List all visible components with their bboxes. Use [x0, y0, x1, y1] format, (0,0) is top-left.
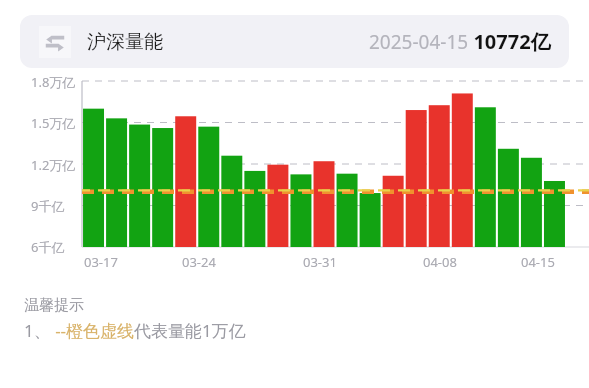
staticText: 1.8万亿 — [31, 73, 76, 91]
staticText: 1、 --橙色虚线代表量能1万亿 — [24, 319, 246, 342]
staticText: 9千亿 — [31, 197, 65, 215]
staticText: 1.5万亿 — [31, 114, 76, 132]
staticText: 温馨提示 — [24, 296, 84, 315]
staticText: 1.2万亿 — [31, 156, 76, 174]
staticText: 04-08 — [423, 253, 457, 271]
staticText: 6千亿 — [31, 238, 65, 256]
staticText: 04-15 — [521, 253, 555, 271]
staticText: 沪深量能 — [87, 30, 163, 54]
staticText: 03-17 — [84, 253, 118, 271]
staticText: 2025-04-15 10772亿 — [369, 28, 551, 55]
button[interactable]: Exchange — [20, 15, 569, 68]
staticText: 03-24 — [182, 253, 216, 271]
button[interactable]: Exchange — [39, 26, 71, 58]
staticText: 03-31 — [303, 253, 337, 271]
